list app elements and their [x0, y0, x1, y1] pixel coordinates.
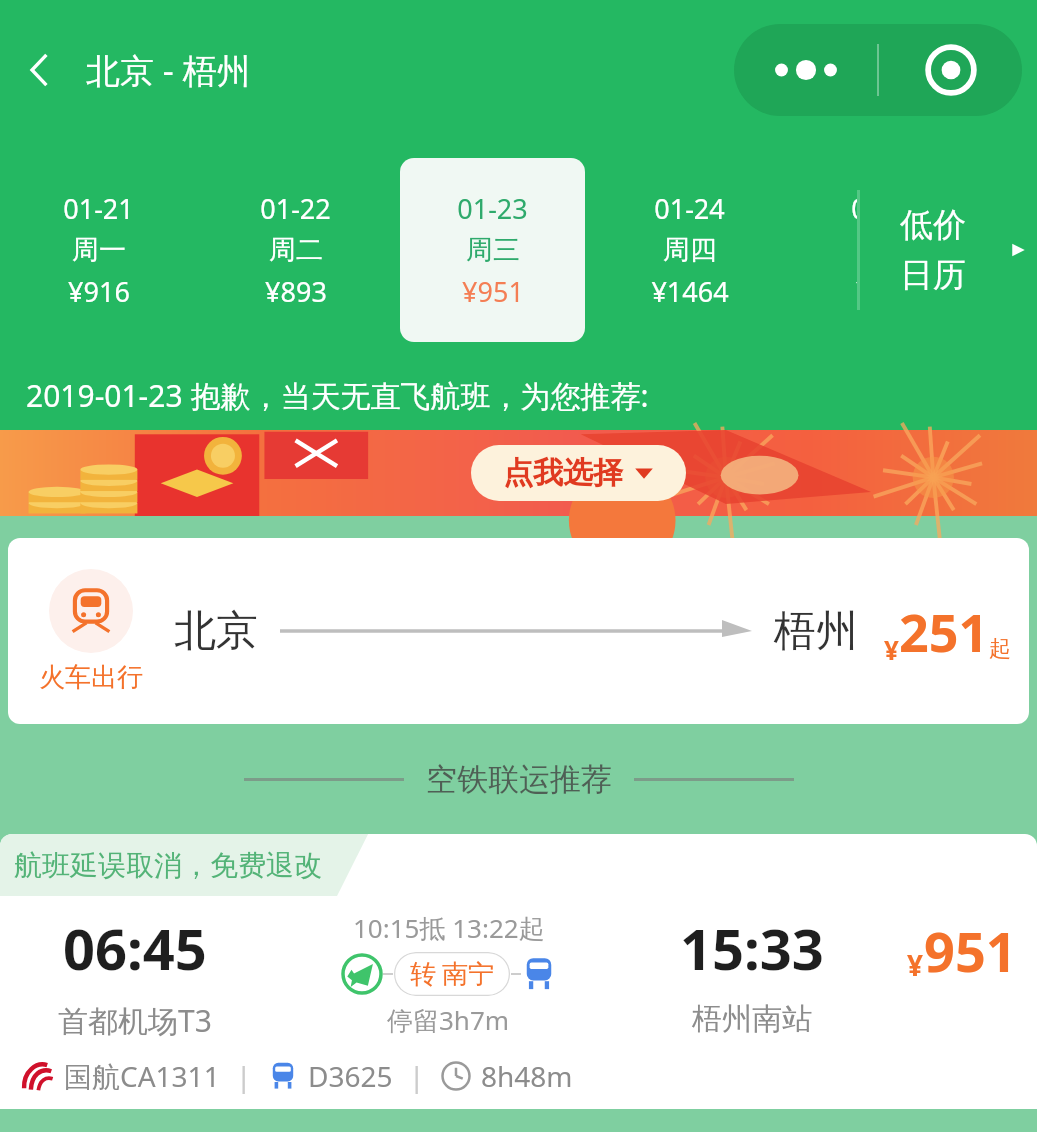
button[interactable]: More options	[734, 24, 1022, 116]
staticText: 01-23	[457, 190, 528, 227]
staticText: 点我选择	[503, 454, 623, 492]
staticText: 251	[899, 596, 989, 667]
staticText: 周五	[860, 233, 914, 267]
button[interactable]: 01-24	[597, 158, 782, 342]
staticText: 梧州	[774, 605, 858, 658]
button[interactable]: 低价	[857, 140, 1037, 360]
button[interactable]: 火车出行	[8, 538, 1029, 724]
staticText: ¥951	[462, 273, 524, 310]
staticText: 日历	[900, 254, 966, 296]
staticText: 01-21	[63, 190, 134, 227]
staticText: ¥893	[265, 273, 327, 310]
staticText: 周三	[466, 233, 520, 267]
button[interactable]: 点我选择	[471, 445, 686, 501]
staticText: 航班延误取消，免费退改	[14, 848, 322, 883]
staticText: ¥1464	[651, 273, 729, 310]
button[interactable]: 01-25	[794, 158, 979, 342]
staticText: 951	[924, 914, 1017, 988]
button[interactable]: 航班延误取消，免费退改	[0, 834, 1037, 1109]
staticText: 01-22	[260, 190, 331, 227]
staticText: 2019-01-23 抱歉，当天无直飞航班，为您推荐:	[26, 375, 649, 416]
staticText: 周一	[72, 233, 126, 267]
staticText: 火车出行	[39, 661, 143, 694]
button[interactable]: Back	[8, 38, 72, 102]
button[interactable]: 01-21	[6, 158, 191, 342]
staticText: 起	[989, 635, 1011, 663]
staticText: 8h48m	[481, 1057, 573, 1095]
staticText: 周四	[663, 233, 717, 267]
staticText: 梧州南站	[692, 1000, 812, 1038]
staticText: 转	[410, 958, 436, 991]
button[interactable]: 01-22	[203, 158, 388, 342]
staticText: 南宁	[442, 958, 494, 991]
staticText: 国航CA1311	[64, 1057, 220, 1095]
staticText: 停留3h7m	[387, 1002, 510, 1038]
staticText: 首都机场T3	[58, 1000, 212, 1041]
staticText: ¥916	[68, 273, 130, 310]
button[interactable]: 01-23	[400, 158, 585, 342]
staticText: 周二	[269, 233, 323, 267]
staticText: 06:45	[63, 910, 207, 986]
staticText: 北京	[174, 605, 258, 658]
staticText: D3625	[308, 1057, 393, 1095]
staticText: |	[409, 1057, 425, 1095]
staticText: ¥951	[856, 273, 918, 310]
staticText: 01-24	[654, 190, 725, 227]
staticText: 15:33	[680, 910, 824, 986]
staticText: 空铁联运推荐	[426, 760, 612, 799]
staticText: |	[236, 1057, 252, 1095]
button[interactable]: 点我选择	[0, 430, 1037, 516]
staticText: 01-25	[851, 190, 922, 227]
staticText: 北京 - 梧州	[86, 47, 251, 93]
staticText: 低价	[900, 204, 966, 246]
staticText: ¥	[884, 632, 899, 667]
staticText: 10:15抵 13:22起	[353, 910, 545, 946]
staticText: ¥	[907, 946, 924, 984]
